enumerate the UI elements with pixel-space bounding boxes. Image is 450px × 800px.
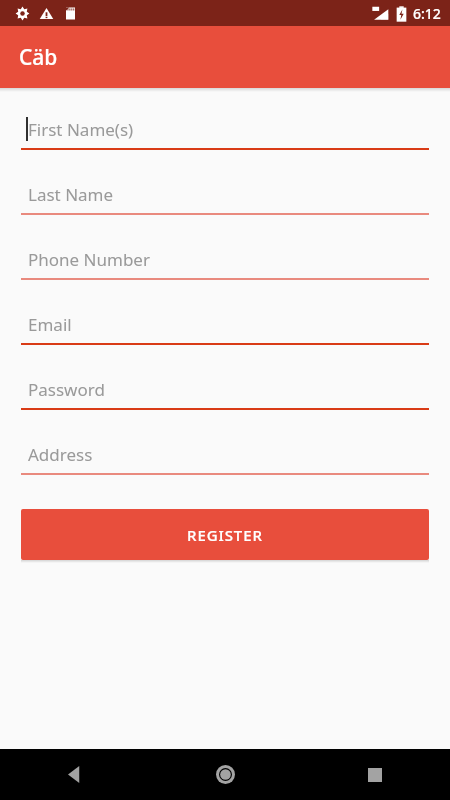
button[interactable]: Recent apps xyxy=(300,749,450,800)
staticText: Phone Number xyxy=(28,248,150,271)
button[interactable]: Email xyxy=(21,305,429,345)
button[interactable]: Password xyxy=(21,370,429,410)
staticText: Email xyxy=(28,313,72,336)
button[interactable]: Address xyxy=(21,435,429,475)
button[interactable]: Back xyxy=(0,749,150,800)
staticText: REGISTER xyxy=(187,525,263,545)
staticText: Cäb xyxy=(19,43,58,72)
staticText: 6:12 xyxy=(413,4,441,23)
staticText: First Name(s) xyxy=(28,118,134,141)
staticText: Address xyxy=(28,443,93,466)
button[interactable]: Home xyxy=(150,749,300,800)
button[interactable]: REGISTER xyxy=(21,509,429,560)
staticText: Password xyxy=(28,378,105,401)
button[interactable]: First Name(s) xyxy=(21,110,429,150)
staticText: Last Name xyxy=(28,183,114,206)
button[interactable]: Phone Number xyxy=(21,240,429,280)
button[interactable]: Last Name xyxy=(21,175,429,215)
